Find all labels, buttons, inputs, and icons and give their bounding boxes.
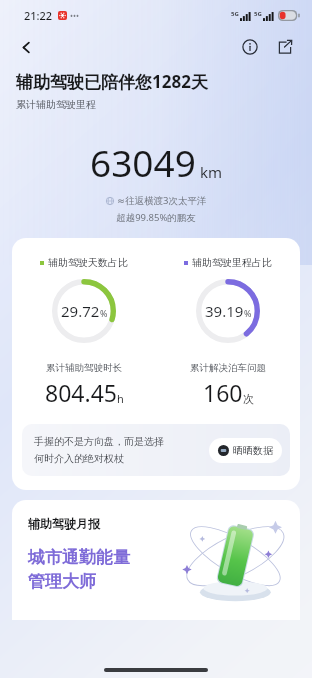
staticText: 5G: [231, 10, 239, 18]
staticText: %: [100, 307, 108, 319]
staticText: 超越99.85%的鹏友: [0, 211, 312, 224]
button[interactable]: Back: [10, 31, 42, 63]
staticText: 管理大师: [28, 571, 96, 592]
staticText: 5G: [254, 10, 262, 18]
staticText: 累计辅助驾驶时长: [46, 362, 122, 374]
staticText: 城市通勤能量: [28, 547, 130, 568]
staticText: 次: [243, 392, 254, 406]
staticText: 辅助驾驶天数占比: [48, 256, 128, 269]
staticText: 晒晒数据: [233, 444, 273, 457]
staticText: 39.19: [205, 301, 244, 321]
staticText: %: [244, 307, 252, 319]
staticText: 手握的不是方向盘，而是选择: [34, 435, 164, 448]
staticText: 辅助驾驶已陪伴您1282天: [16, 70, 208, 93]
button[interactable]: Info: [235, 32, 265, 62]
staticText: 辅助驾驶月报: [28, 516, 100, 531]
staticText: 29.72: [61, 301, 100, 321]
staticText: 累计解决泊车问题: [190, 362, 266, 374]
staticText: 63049: [90, 137, 196, 187]
staticText: km: [200, 162, 223, 182]
staticText: 160: [203, 377, 243, 408]
button[interactable]: 辅助驾驶月报: [12, 500, 300, 620]
staticText: ≈往返横渡3次太平洋: [117, 194, 207, 207]
button[interactable]: 晒晒数据: [209, 438, 282, 463]
staticText: 何时介入的绝对权杖: [34, 452, 124, 465]
button[interactable]: Share: [270, 32, 300, 62]
staticText: •••: [70, 10, 80, 21]
button[interactable]: 辅助驾驶天数占比: [12, 238, 300, 490]
staticText: h: [117, 391, 124, 406]
staticText: 辅助驾驶里程占比: [192, 256, 272, 269]
staticText: 21:22: [24, 8, 53, 23]
staticText: 804.45: [45, 377, 117, 408]
staticText: 累计辅助驾驶里程: [16, 98, 96, 111]
